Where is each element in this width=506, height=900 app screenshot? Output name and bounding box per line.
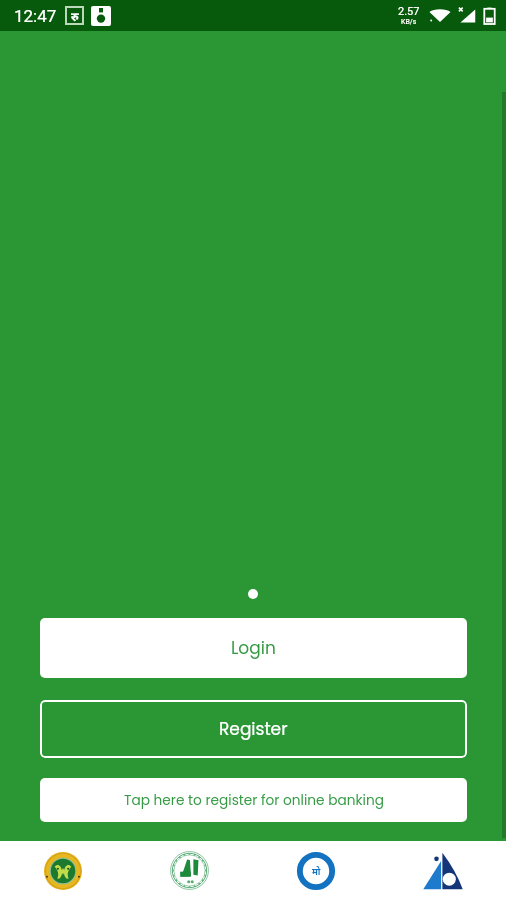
staticText: Tap here to register for online banking <box>124 791 384 810</box>
button[interactable]: Tap here to register for online banking <box>40 778 467 822</box>
button[interactable]: Partner logo <box>379 841 506 900</box>
staticText: Register <box>219 717 288 741</box>
button[interactable]: Mobile banking logo <box>252 841 379 900</box>
button[interactable]: Register <box>40 700 467 758</box>
staticText: 12:47 <box>14 6 57 26</box>
button[interactable]: Login <box>40 618 467 678</box>
button[interactable]: Bank seal logo <box>126 841 252 900</box>
staticText: KB/s <box>401 18 417 26</box>
staticText: Login <box>231 636 276 660</box>
staticText: 2.57 <box>398 5 420 18</box>
staticText: मो <box>312 865 321 877</box>
button[interactable]: Nepal Government logo <box>0 841 126 900</box>
staticText: रु <box>71 8 79 24</box>
